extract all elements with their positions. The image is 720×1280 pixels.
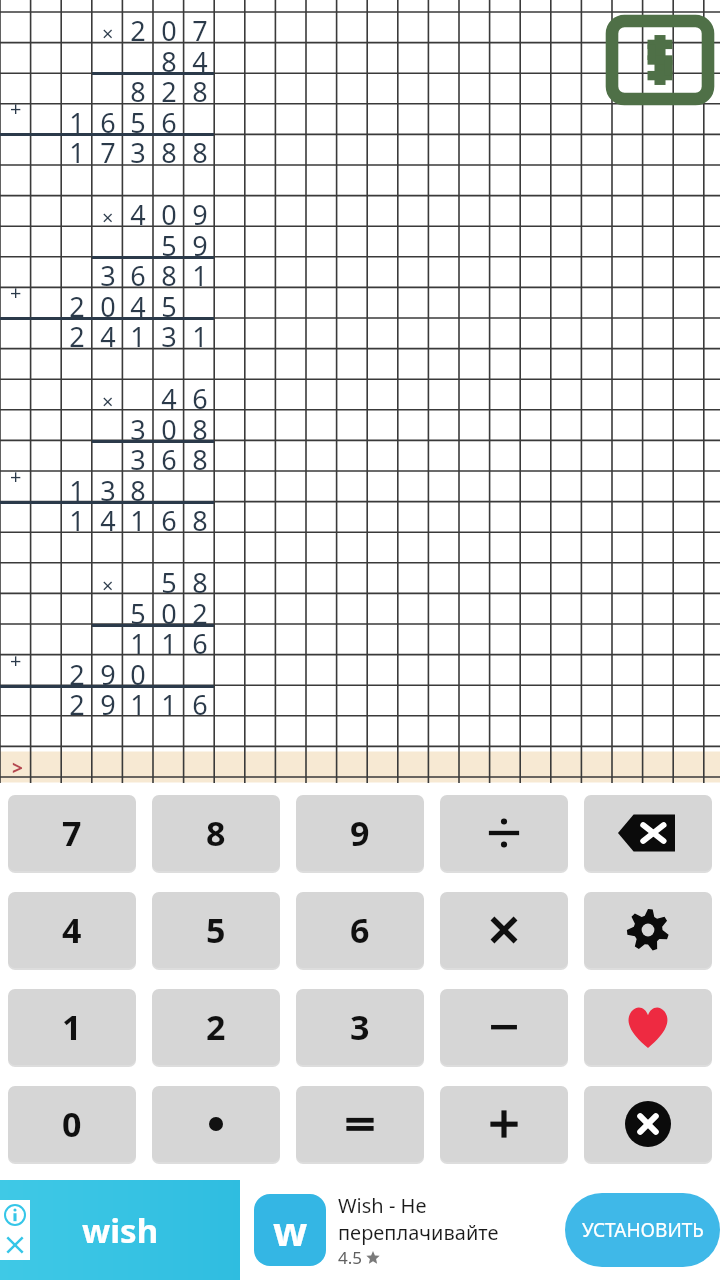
staticText: 9: [350, 810, 370, 856]
staticText: 3: [100, 472, 116, 503]
staticText: 8: [206, 810, 226, 856]
staticText: 0: [161, 411, 177, 442]
button[interactable]: Backspace: [584, 795, 712, 871]
button[interactable]: [440, 892, 568, 968]
button[interactable]: Favorite: [584, 989, 712, 1065]
button[interactable]: 0: [8, 1086, 136, 1162]
staticText: 8: [192, 411, 208, 442]
staticText: 1: [161, 686, 177, 717]
staticText: 7: [100, 134, 116, 165]
staticText: +: [10, 647, 22, 674]
button[interactable]: 9: [296, 795, 424, 871]
staticText: ×: [102, 388, 114, 415]
staticText: 6: [161, 502, 177, 533]
staticText: 3: [161, 318, 177, 349]
staticText: wish: [82, 1208, 159, 1253]
button[interactable]: 3: [296, 989, 424, 1065]
staticText: 7: [62, 810, 82, 856]
staticText: w: [273, 1203, 308, 1257]
staticText: 4: [161, 380, 177, 411]
staticText: ×: [102, 572, 114, 599]
staticText: 8: [192, 73, 208, 104]
staticText: 5: [161, 227, 177, 258]
button[interactable]: Clear: [584, 1086, 712, 1162]
staticText: 9: [100, 656, 116, 687]
button[interactable]: 6: [296, 892, 424, 968]
staticText: 1: [69, 134, 85, 165]
staticText: 4: [100, 318, 116, 349]
staticText: 3: [130, 134, 146, 165]
button[interactable]: 7: [8, 795, 136, 871]
staticText: 4.5: [338, 1246, 363, 1269]
staticText: 8: [192, 441, 208, 472]
staticText: 7: [192, 12, 208, 43]
button[interactable]: Settings: [584, 892, 712, 968]
button[interactable]: Ad info: [0, 1200, 30, 1230]
staticText: 4: [130, 196, 146, 227]
staticText: >: [12, 755, 23, 781]
staticText: 1: [130, 502, 146, 533]
staticText: 6: [130, 257, 146, 288]
staticText: 8: [130, 73, 146, 104]
staticText: 1: [69, 104, 85, 135]
button[interactable]: 1: [8, 989, 136, 1065]
staticText: 1: [192, 318, 208, 349]
staticText: 4: [192, 43, 208, 74]
staticText: 6: [161, 104, 177, 135]
staticText: 3: [130, 441, 146, 472]
button[interactable]: wish: [0, 1180, 240, 1280]
staticText: 8: [161, 43, 177, 74]
staticText: 8: [161, 134, 177, 165]
staticText: 5: [130, 595, 146, 626]
staticText: Wish - Не: [338, 1192, 427, 1219]
staticText: 8: [192, 134, 208, 165]
button[interactable]: Remove ads: [612, 21, 708, 99]
staticText: 5: [161, 288, 177, 319]
staticText: 4: [62, 907, 82, 953]
button[interactable]: 8: [152, 795, 280, 871]
button[interactable]: [152, 1086, 280, 1162]
button[interactable]: [440, 989, 568, 1065]
staticText: 2: [69, 686, 85, 717]
staticText: 8: [192, 502, 208, 533]
staticText: 6: [161, 441, 177, 472]
staticText: 5: [161, 564, 177, 595]
staticText: 4: [100, 502, 116, 533]
button[interactable]: w: [240, 1180, 720, 1280]
button[interactable]: 4: [8, 892, 136, 968]
staticText: 0: [161, 196, 177, 227]
staticText: УСТАНОВИТЬ: [582, 1217, 704, 1243]
staticText: 1: [130, 625, 146, 656]
staticText: 3: [130, 411, 146, 442]
staticText: 6: [350, 907, 370, 953]
staticText: 2: [69, 656, 85, 687]
staticText: +: [10, 279, 22, 306]
staticText: 0: [161, 12, 177, 43]
staticText: 9: [192, 227, 208, 258]
staticText: +: [10, 95, 22, 122]
staticText: 8: [130, 472, 146, 503]
staticText: 2: [69, 318, 85, 349]
button[interactable]: Close ad: [0, 1230, 30, 1260]
button[interactable]: 2: [152, 989, 280, 1065]
staticText: 1: [62, 1004, 82, 1050]
staticText: 2: [69, 288, 85, 319]
staticText: 6: [192, 625, 208, 656]
staticText: 1: [192, 257, 208, 288]
button[interactable]: [296, 1086, 424, 1162]
staticText: 1: [69, 472, 85, 503]
staticText: переплачивайте: [338, 1219, 499, 1246]
button[interactable]: [440, 795, 568, 871]
staticText: ×: [102, 20, 114, 47]
staticText: 4: [130, 288, 146, 319]
button[interactable]: [440, 1086, 568, 1162]
staticText: 1: [161, 625, 177, 656]
staticText: 6: [192, 686, 208, 717]
button[interactable]: УСТАНОВИТЬ: [565, 1193, 720, 1267]
button[interactable]: 5: [152, 892, 280, 968]
staticText: 8: [161, 257, 177, 288]
staticText: 5: [206, 907, 226, 953]
staticText: 1: [69, 502, 85, 533]
staticText: 0: [161, 595, 177, 626]
staticText: 2: [206, 1004, 226, 1050]
